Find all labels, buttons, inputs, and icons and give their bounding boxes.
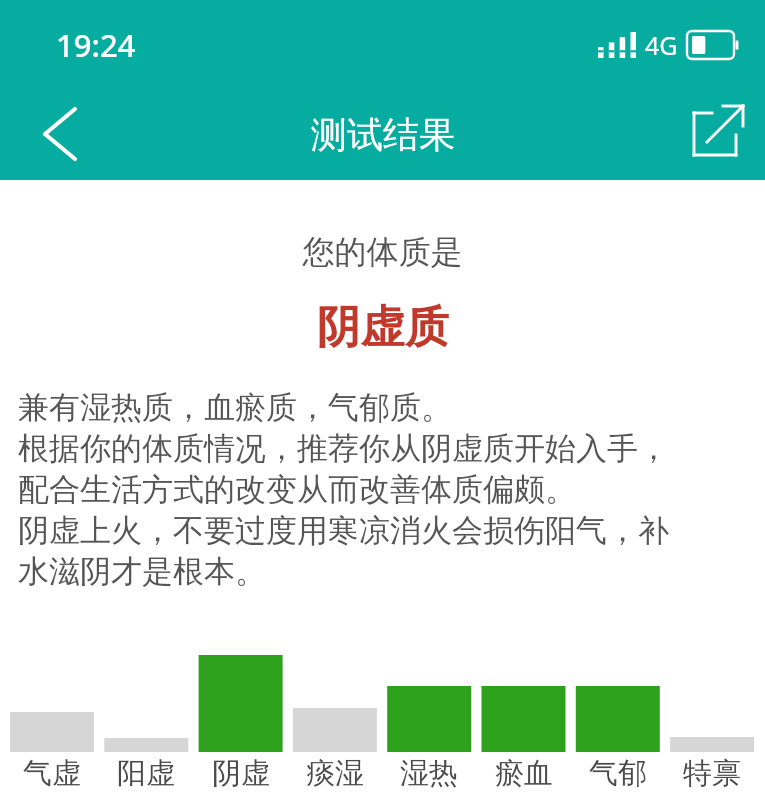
button[interactable]: 气虚 <box>10 755 94 805</box>
button[interactable]: 痰湿 <box>293 755 377 805</box>
staticText: 4G <box>645 28 678 62</box>
staticText: 测试结果 <box>311 112 455 157</box>
staticText: 瘀血 <box>495 755 553 792</box>
staticText: 气郁 <box>589 755 647 792</box>
staticText: 阳虚 <box>117 755 175 792</box>
button[interactable]: 气郁 <box>576 755 660 805</box>
button[interactable]: 阴虚 <box>199 755 283 805</box>
staticText: 湿热 <box>400 755 458 792</box>
staticText: 19:24 <box>56 24 136 66</box>
staticText: 气虚 <box>23 755 81 792</box>
staticText: 阴虚质 <box>0 300 765 355</box>
button[interactable]: Back <box>22 96 98 172</box>
staticText: 痰湿 <box>306 755 364 792</box>
staticText: 兼有湿热质，血瘀质，气郁质。 根据你的体质情况，推荐你从阴虚质开始入手， 配合生… <box>18 388 759 591</box>
button[interactable]: 湿热 <box>387 755 471 805</box>
button[interactable]: 瘀血 <box>482 755 566 805</box>
button[interactable]: 特禀 <box>670 755 754 805</box>
staticText: 特禀 <box>683 755 741 792</box>
button[interactable]: Share <box>679 98 751 170</box>
staticText: 阴虚 <box>212 755 270 792</box>
staticText: 您的体质是 <box>0 232 765 272</box>
button[interactable]: 阳虚 <box>104 755 188 805</box>
